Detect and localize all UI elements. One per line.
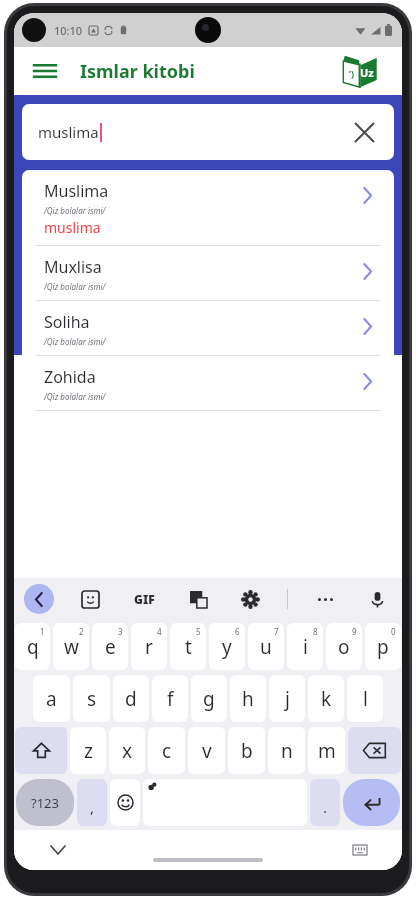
button[interactable]: muslima bbox=[22, 104, 394, 160]
button[interactable]: x bbox=[109, 727, 145, 774]
button[interactable]: Soliha bbox=[22, 301, 394, 355]
staticText: /Qiz bolalar ismi/ bbox=[44, 205, 106, 216]
staticText: m bbox=[318, 738, 336, 764]
staticText: 5 bbox=[196, 626, 201, 637]
button[interactable]: q bbox=[15, 623, 50, 670]
staticText: k bbox=[321, 686, 332, 712]
staticText: Soliha bbox=[44, 311, 90, 333]
staticText: 0 bbox=[391, 626, 396, 637]
staticText: f bbox=[167, 686, 174, 712]
staticText: b bbox=[241, 738, 253, 764]
staticText: c bbox=[162, 738, 172, 764]
staticText: x bbox=[122, 738, 133, 764]
button[interactable]: Hide keyboard bbox=[44, 836, 72, 864]
button[interactable]: o bbox=[326, 623, 362, 670]
staticText: 7 bbox=[274, 626, 279, 637]
button[interactable]: b bbox=[228, 727, 265, 774]
button[interactable]: Muslima bbox=[22, 170, 394, 245]
button[interactable]: Clear search bbox=[350, 118, 378, 146]
button[interactable]: u bbox=[248, 623, 284, 670]
button[interactable]: Menu bbox=[28, 54, 62, 88]
staticText: 2 bbox=[79, 626, 84, 637]
staticText: s bbox=[87, 686, 97, 712]
button[interactable]: a bbox=[33, 675, 70, 722]
button[interactable]: k bbox=[308, 675, 344, 722]
button[interactable]: ?123 bbox=[16, 779, 74, 826]
staticText: w bbox=[64, 634, 79, 660]
button[interactable]: v bbox=[188, 727, 225, 774]
staticText: ʼ) bbox=[349, 67, 355, 79]
staticText: r bbox=[145, 634, 153, 660]
button[interactable]: n bbox=[268, 727, 305, 774]
button[interactable]: f bbox=[152, 675, 188, 722]
staticText: 3 bbox=[118, 626, 123, 637]
button[interactable]: z bbox=[70, 727, 106, 774]
button[interactable]: Space bbox=[143, 779, 307, 826]
staticText: , bbox=[90, 797, 95, 817]
staticText: muslima bbox=[38, 122, 99, 142]
staticText: Ismlar kitobi bbox=[80, 59, 195, 84]
staticText: 9 bbox=[352, 626, 357, 637]
button[interactable]: s bbox=[73, 675, 110, 722]
staticText: n bbox=[281, 738, 293, 764]
staticText: muslima bbox=[44, 218, 101, 237]
button[interactable]: , bbox=[77, 779, 107, 826]
staticText: q bbox=[27, 634, 39, 660]
staticText: j bbox=[285, 686, 290, 712]
button[interactable]: e bbox=[92, 623, 128, 670]
staticText: i bbox=[303, 634, 308, 660]
staticText: /Qiz bolalar ismi/ bbox=[44, 281, 106, 292]
button[interactable]: j bbox=[269, 675, 305, 722]
button[interactable]: m bbox=[308, 727, 345, 774]
staticText: Muslima bbox=[44, 180, 109, 202]
button[interactable]: Enter bbox=[343, 779, 400, 826]
button[interactable]: Emoji bbox=[110, 779, 140, 826]
staticText: h bbox=[242, 686, 254, 712]
button[interactable]: g bbox=[191, 675, 227, 722]
staticText: a bbox=[46, 686, 57, 712]
staticText: 6 bbox=[235, 626, 240, 637]
staticText: 10:10 bbox=[54, 23, 83, 38]
staticText: p bbox=[377, 634, 389, 660]
button[interactable]: d bbox=[113, 675, 149, 722]
button[interactable]: GIF bbox=[127, 582, 161, 616]
staticText: Zohida bbox=[44, 366, 96, 388]
staticText: y bbox=[222, 634, 232, 660]
button[interactable]: Back bbox=[24, 584, 54, 614]
button[interactable]: t bbox=[170, 623, 206, 670]
button[interactable]: Backspace bbox=[348, 727, 401, 774]
staticText: ?123 bbox=[31, 794, 59, 812]
staticText: g bbox=[203, 686, 215, 712]
staticText: o bbox=[338, 634, 350, 660]
button[interactable]: r bbox=[131, 623, 167, 670]
button[interactable]: l bbox=[347, 675, 383, 722]
button[interactable]: p bbox=[365, 623, 401, 670]
staticText: Uz bbox=[360, 65, 374, 80]
staticText: e bbox=[105, 634, 116, 660]
button[interactable]: App logo bbox=[340, 51, 380, 91]
staticText: /Qiz bolalar ismi/ bbox=[44, 336, 106, 347]
staticText: d bbox=[125, 686, 137, 712]
button[interactable]: Shift bbox=[15, 727, 67, 774]
button[interactable]: i bbox=[287, 623, 323, 670]
staticText: 8 bbox=[313, 626, 318, 637]
button[interactable]: Muxlisa bbox=[22, 246, 394, 300]
staticText: 4 bbox=[157, 626, 162, 637]
button[interactable]: Switch keyboard bbox=[346, 836, 374, 864]
staticText: /Qiz bolalar ismi/ bbox=[44, 391, 106, 402]
button[interactable]: y bbox=[209, 623, 245, 670]
button[interactable]: c bbox=[148, 727, 185, 774]
staticText: l bbox=[363, 686, 368, 712]
button[interactable]: Translate bbox=[183, 584, 213, 614]
button[interactable]: Zohida bbox=[22, 356, 394, 410]
staticText: 1 bbox=[40, 626, 45, 637]
button[interactable]: Stickers bbox=[75, 584, 105, 614]
button[interactable]: Voice input bbox=[362, 584, 392, 614]
button[interactable]: w bbox=[53, 623, 89, 670]
button[interactable]: Settings bbox=[235, 584, 265, 614]
staticText: z bbox=[84, 738, 93, 764]
staticText: t bbox=[185, 634, 192, 660]
button[interactable]: More options bbox=[310, 584, 340, 614]
button[interactable]: h bbox=[230, 675, 266, 722]
button[interactable]: . bbox=[310, 779, 340, 826]
